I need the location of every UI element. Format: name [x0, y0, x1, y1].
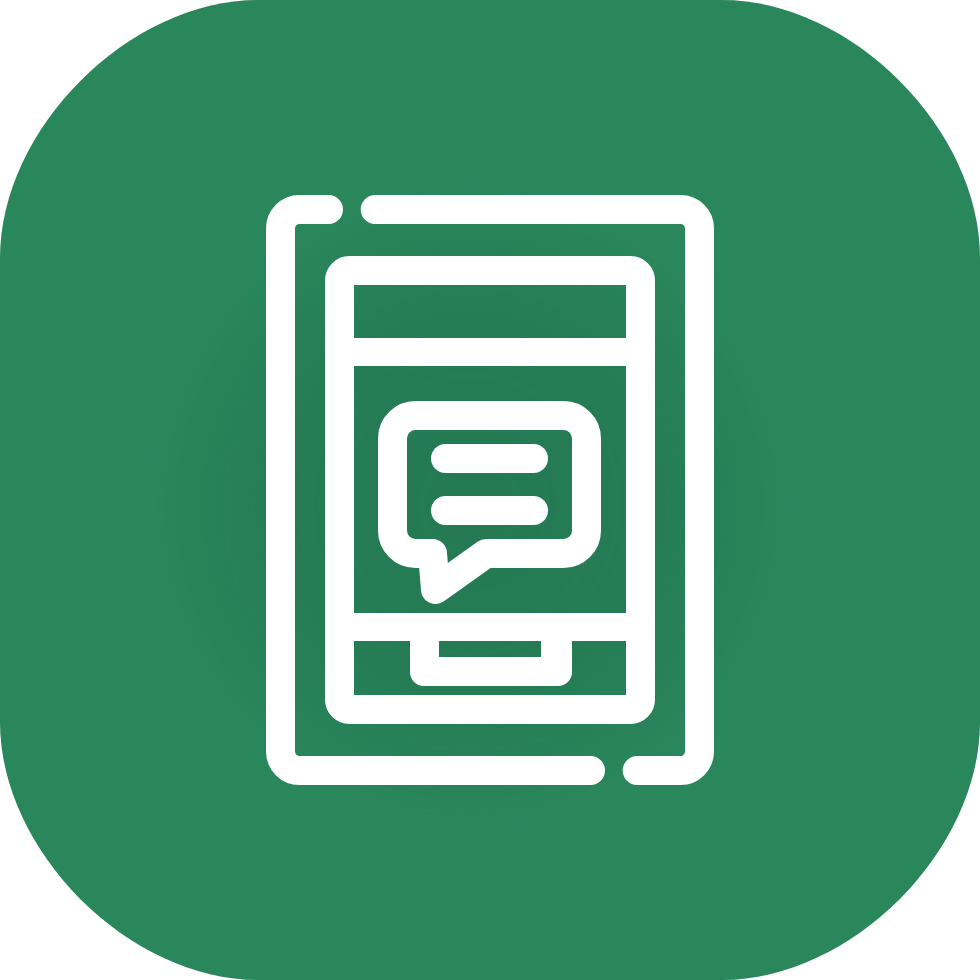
- button[interactable]: Mobile messaging app icon: [0, 0, 980, 980]
